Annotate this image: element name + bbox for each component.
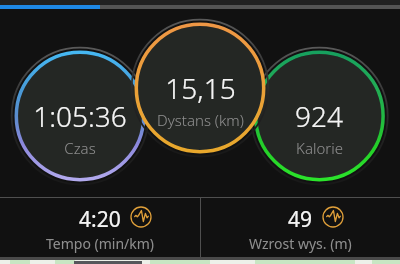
staticText: Wzrost wys. (m) xyxy=(249,234,352,253)
staticText: Dystans (km) xyxy=(157,110,244,130)
staticText: 4:20 xyxy=(79,205,121,229)
button[interactable]: 49 xyxy=(200,198,400,257)
staticText: Kalorie xyxy=(296,138,343,158)
button[interactable]: 924 xyxy=(249,97,389,157)
staticText: 15,15 xyxy=(165,69,236,103)
other: Activity chart xyxy=(130,206,152,228)
button[interactable]: 4:20 xyxy=(0,198,200,257)
staticText: Czas xyxy=(64,138,96,158)
staticText: Tempo (min/km) xyxy=(46,234,155,253)
other: Activity chart xyxy=(322,206,344,228)
staticText: 49 xyxy=(288,205,313,229)
staticText: 924 xyxy=(295,97,343,131)
button[interactable]: 1:05:36 xyxy=(10,97,150,157)
staticText: 1:05:36 xyxy=(33,97,127,131)
button[interactable]: 15,15 xyxy=(130,69,270,129)
